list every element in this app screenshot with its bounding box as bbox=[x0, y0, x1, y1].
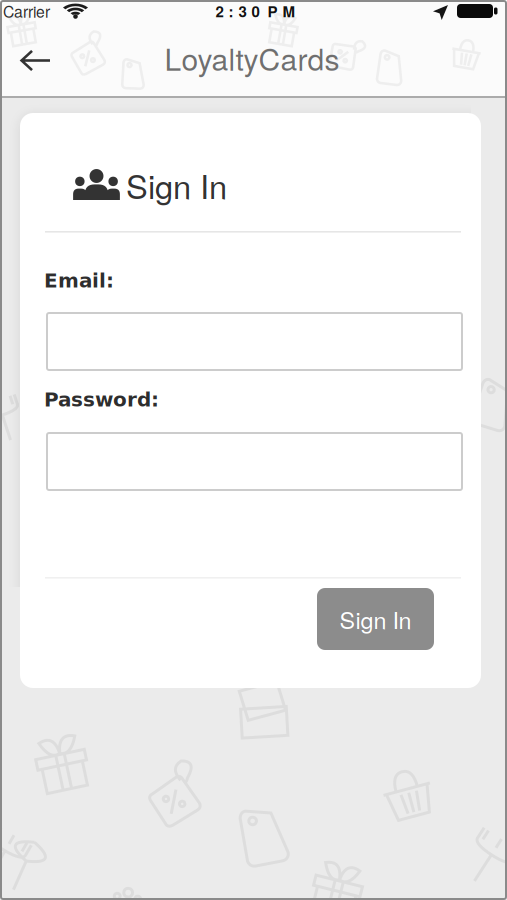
staticText: Sign In bbox=[339, 602, 411, 636]
staticText: Sign In bbox=[126, 162, 227, 208]
staticText: Carrier bbox=[3, 0, 50, 22]
button[interactable]: Back bbox=[11, 38, 60, 82]
staticText: Password: bbox=[44, 388, 159, 411]
button[interactable]: Sign In bbox=[317, 588, 434, 650]
staticText: 2 : 3 0 P M bbox=[215, 0, 295, 22]
staticText: Email: bbox=[44, 269, 114, 292]
staticText: LoyaltyCards bbox=[164, 36, 339, 79]
